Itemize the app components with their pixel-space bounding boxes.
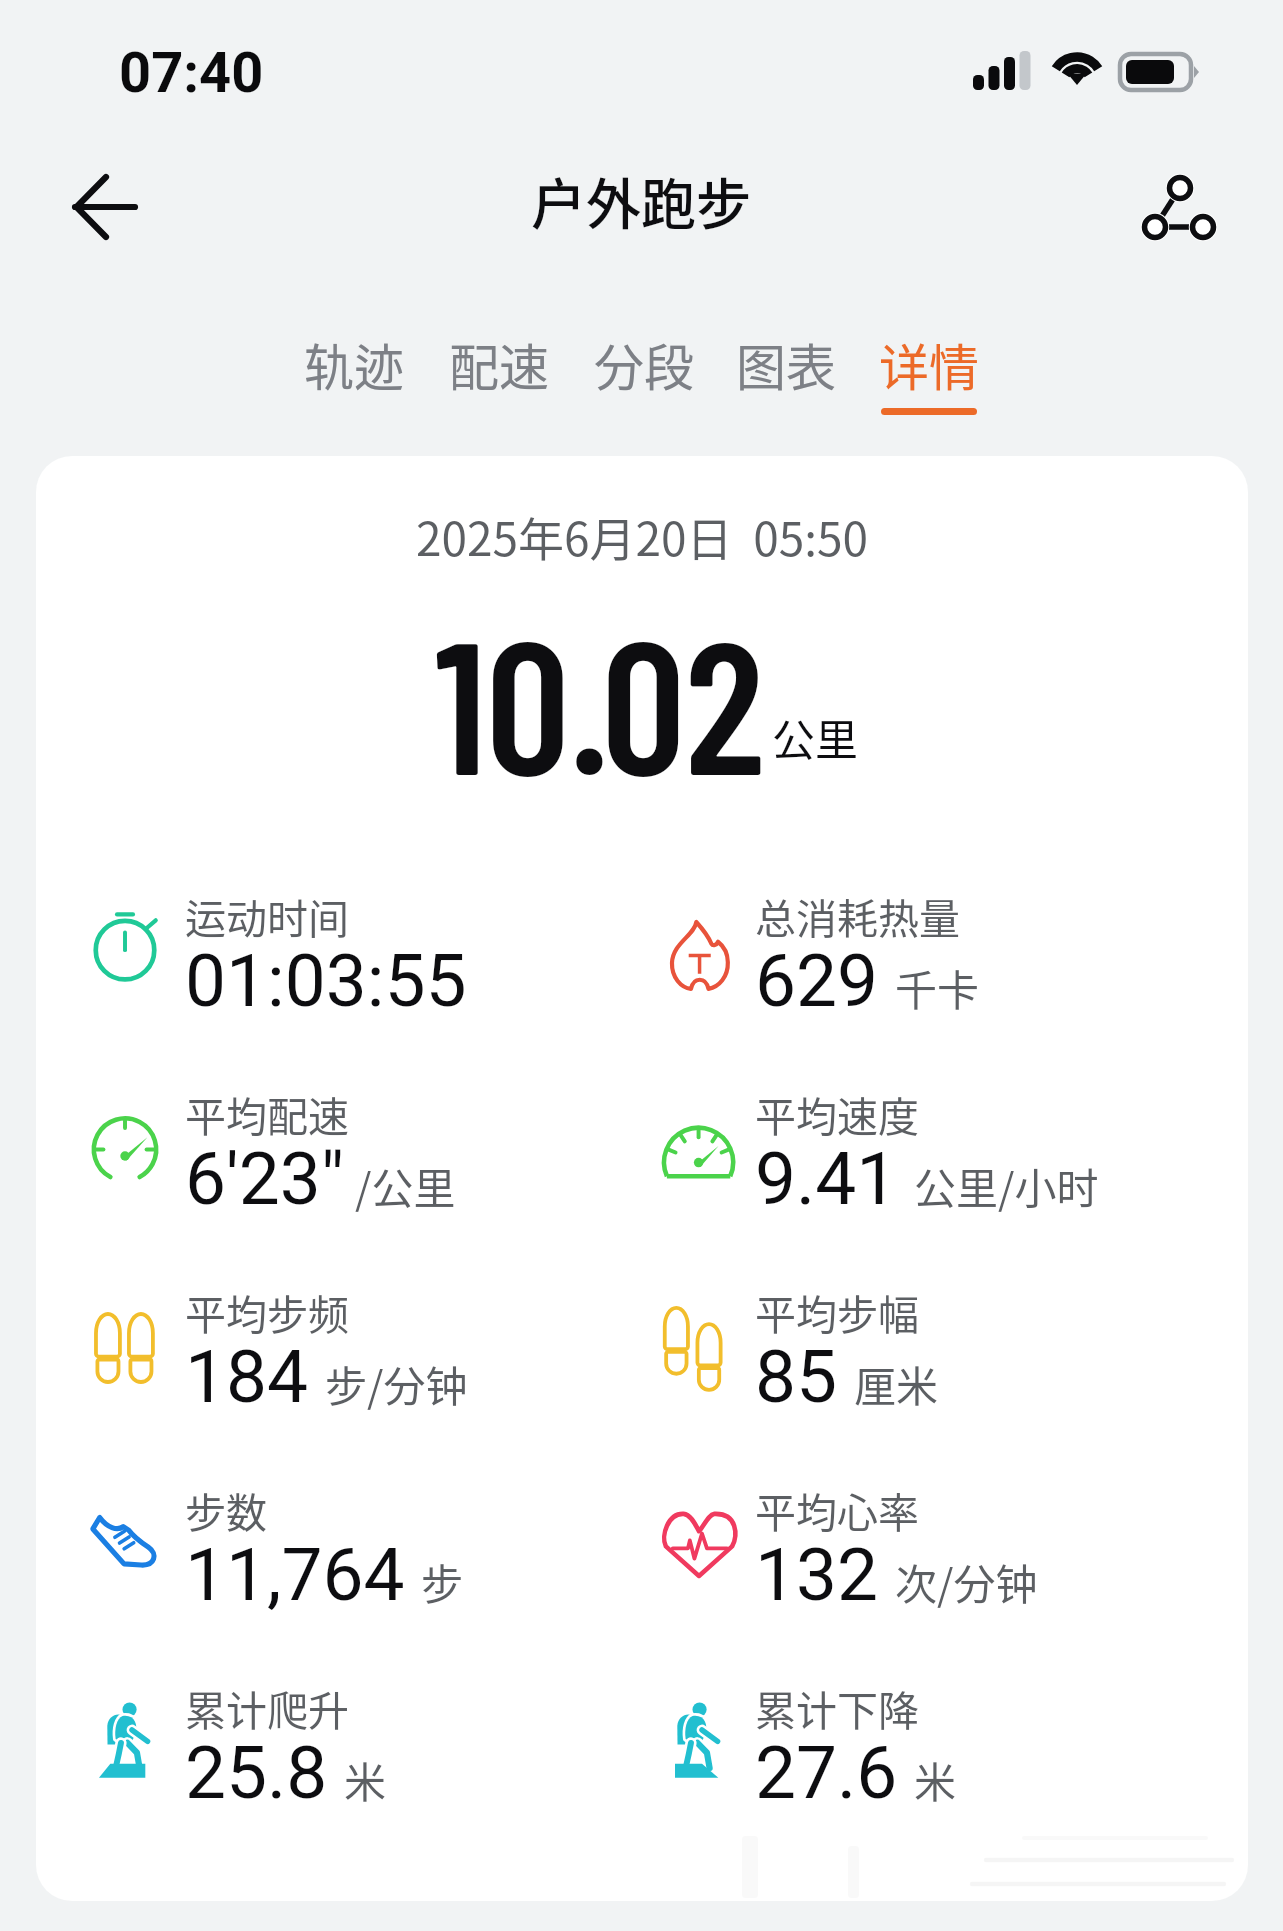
staticText: 详情 [879, 328, 979, 400]
staticText: 运动时间 [185, 886, 349, 938]
button[interactable]: 平均心率 [664, 1480, 1229, 1650]
staticText: 平均配速 [185, 1084, 349, 1136]
button[interactable]: 详情 [867, 328, 991, 426]
staticText: 132 [755, 1532, 879, 1618]
staticText: 公里 [772, 706, 912, 768]
staticText: 累计爬升 [185, 1678, 349, 1730]
staticText: 分段 [594, 328, 694, 400]
staticText: 平均速度 [755, 1084, 919, 1136]
staticText: 步数 [185, 1480, 267, 1532]
button[interactable]: 分段 [582, 328, 706, 426]
button[interactable]: 图表 [724, 328, 848, 426]
staticText: 27.6 [755, 1730, 898, 1816]
staticText: 累计下降 [755, 1678, 919, 1730]
staticText: 公里/小时 [914, 1155, 1099, 1216]
button[interactable]: 平均步幅 [664, 1282, 1229, 1452]
staticText: 10.02 [435, 589, 855, 812]
staticText: 配速 [449, 328, 549, 400]
staticText: 厘米 [854, 1353, 939, 1414]
staticText: 2025年6月20日 05:50 [36, 503, 1248, 570]
staticText: 9.41 [755, 1136, 898, 1222]
staticText: 平均心率 [755, 1480, 919, 1532]
button[interactable]: 步数 [94, 1480, 659, 1650]
staticText: 总消耗热量 [755, 886, 960, 938]
button[interactable]: Share [1133, 164, 1229, 260]
staticText: 25.8 [185, 1730, 328, 1816]
button[interactable]: 配速 [437, 328, 561, 426]
staticText: /公里 [355, 1155, 456, 1216]
staticText: 米 [344, 1749, 387, 1810]
staticText: 图表 [736, 328, 836, 400]
staticText: 629 [755, 938, 879, 1024]
staticText: 184 [185, 1334, 309, 1420]
staticText: 户外跑步 [531, 160, 752, 240]
staticText: 千卡 [895, 957, 980, 1018]
button[interactable]: 运动时间 [94, 886, 659, 1056]
staticText: 平均步频 [185, 1282, 349, 1334]
button[interactable]: 总消耗热量 [664, 886, 1229, 1056]
staticText: 01:03:55 [185, 938, 467, 1024]
button[interactable]: Back [58, 162, 150, 254]
staticText: 次/分钟 [895, 1551, 1038, 1612]
staticText: 步/分钟 [325, 1353, 468, 1414]
button[interactable]: 轨迹 [292, 328, 416, 426]
staticText: 6'23" [185, 1136, 345, 1222]
button[interactable]: 平均步频 [94, 1282, 659, 1452]
staticText: 85 [755, 1334, 838, 1420]
button[interactable]: 累计爬升 [94, 1678, 659, 1848]
staticText: 11,764 [185, 1532, 405, 1618]
button[interactable]: 平均配速 [94, 1084, 659, 1254]
staticText: 07:40 [119, 40, 264, 106]
staticText: 轨迹 [304, 328, 404, 400]
button[interactable]: 平均速度 [664, 1084, 1229, 1254]
staticText: 平均步幅 [755, 1282, 919, 1334]
staticText: 步 [421, 1551, 464, 1612]
staticText: 米 [914, 1749, 957, 1810]
button[interactable]: 累计下降 [664, 1678, 1229, 1848]
